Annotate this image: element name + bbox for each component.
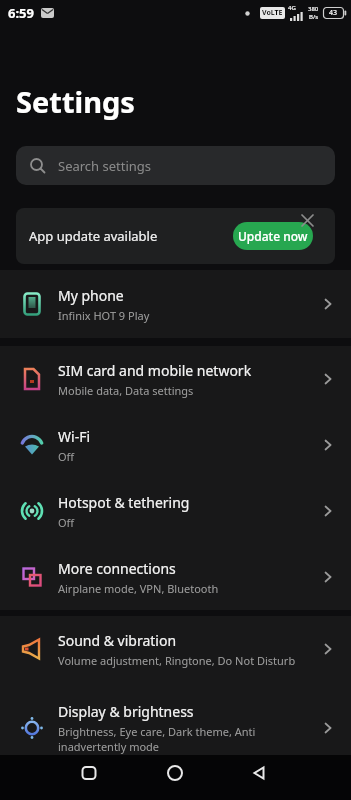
staticText: 4G	[288, 4, 296, 12]
button[interactable]: App update available	[16, 208, 335, 264]
staticText: Infinix HOT 9 Play	[58, 308, 150, 323]
staticText: Off	[58, 515, 75, 530]
button[interactable]: More connections	[0, 544, 351, 610]
staticText: B/s	[309, 13, 319, 21]
staticText: Search settings	[58, 157, 152, 175]
button[interactable]: Search settings	[16, 146, 335, 185]
staticText: Brightness, Eye care, Dark theme, Anti	[58, 724, 256, 739]
staticText: Hotspot & tethering	[58, 493, 190, 512]
button[interactable]: Display & brightness	[0, 682, 351, 773]
button[interactable]	[236, 750, 282, 795]
staticText: App update available	[29, 227, 158, 245]
staticText: Off	[58, 449, 75, 464]
staticText: inadvertently mode	[58, 739, 160, 754]
button[interactable]	[302, 215, 314, 227]
staticText: Display & brightness	[58, 702, 194, 721]
staticText: Settings	[16, 82, 135, 121]
button[interactable]: Wi-Fi	[0, 412, 351, 478]
staticText: Wi-Fi	[58, 427, 91, 446]
staticText: Volume adjustment, Ringtone, Do Not Dist…	[58, 653, 296, 668]
staticText: Mobile data, Data settings	[58, 383, 194, 398]
staticText: VoLTE	[262, 8, 283, 18]
staticText: Airplane mode, VPN, Bluetooth	[58, 581, 219, 596]
button[interactable]	[152, 750, 198, 795]
staticText: More connections	[58, 559, 176, 578]
staticText: Sound & vibration	[58, 631, 177, 650]
button[interactable]: SIM card and mobile network	[0, 346, 351, 412]
button[interactable]: Update now	[233, 222, 313, 250]
button[interactable]: Sound & vibration	[0, 616, 351, 682]
staticText: 43	[329, 8, 338, 18]
button[interactable]: Hotspot & tethering	[0, 478, 351, 544]
staticText: Update now	[238, 228, 308, 244]
staticText: My phone	[58, 286, 124, 305]
staticText: 380	[308, 5, 319, 13]
staticText: SIM card and mobile network	[58, 361, 252, 380]
staticText: 6:59	[8, 4, 34, 22]
button[interactable]: My phone	[0, 270, 351, 338]
button[interactable]	[66, 750, 112, 795]
